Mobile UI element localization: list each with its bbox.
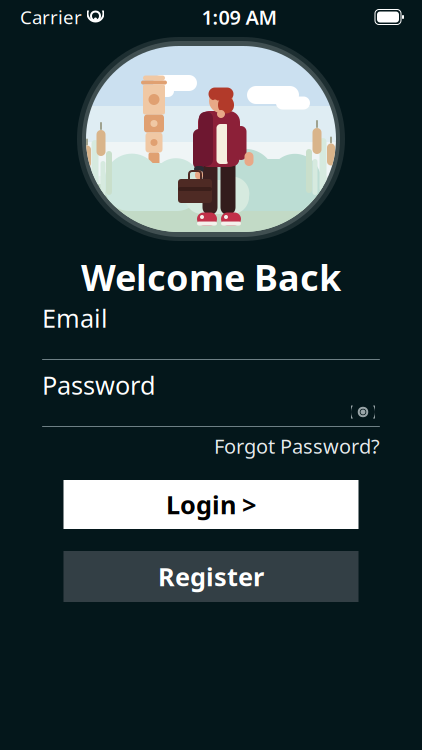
staticText: Carrier xyxy=(20,5,82,29)
staticText: Email xyxy=(42,301,108,335)
button[interactable]: Show password xyxy=(346,398,380,426)
staticText: Password xyxy=(42,368,156,402)
staticText: 1:09 AM xyxy=(201,4,277,30)
button[interactable]: Forgot Password? xyxy=(214,429,380,463)
staticText: Register xyxy=(158,560,264,593)
button[interactable]: Login xyxy=(63,480,358,529)
staticText: > xyxy=(242,488,256,521)
staticText: Login xyxy=(166,488,236,521)
staticText: Welcome Back xyxy=(81,253,341,301)
button[interactable]: Register xyxy=(63,551,358,602)
staticText: Forgot Password? xyxy=(214,433,380,459)
